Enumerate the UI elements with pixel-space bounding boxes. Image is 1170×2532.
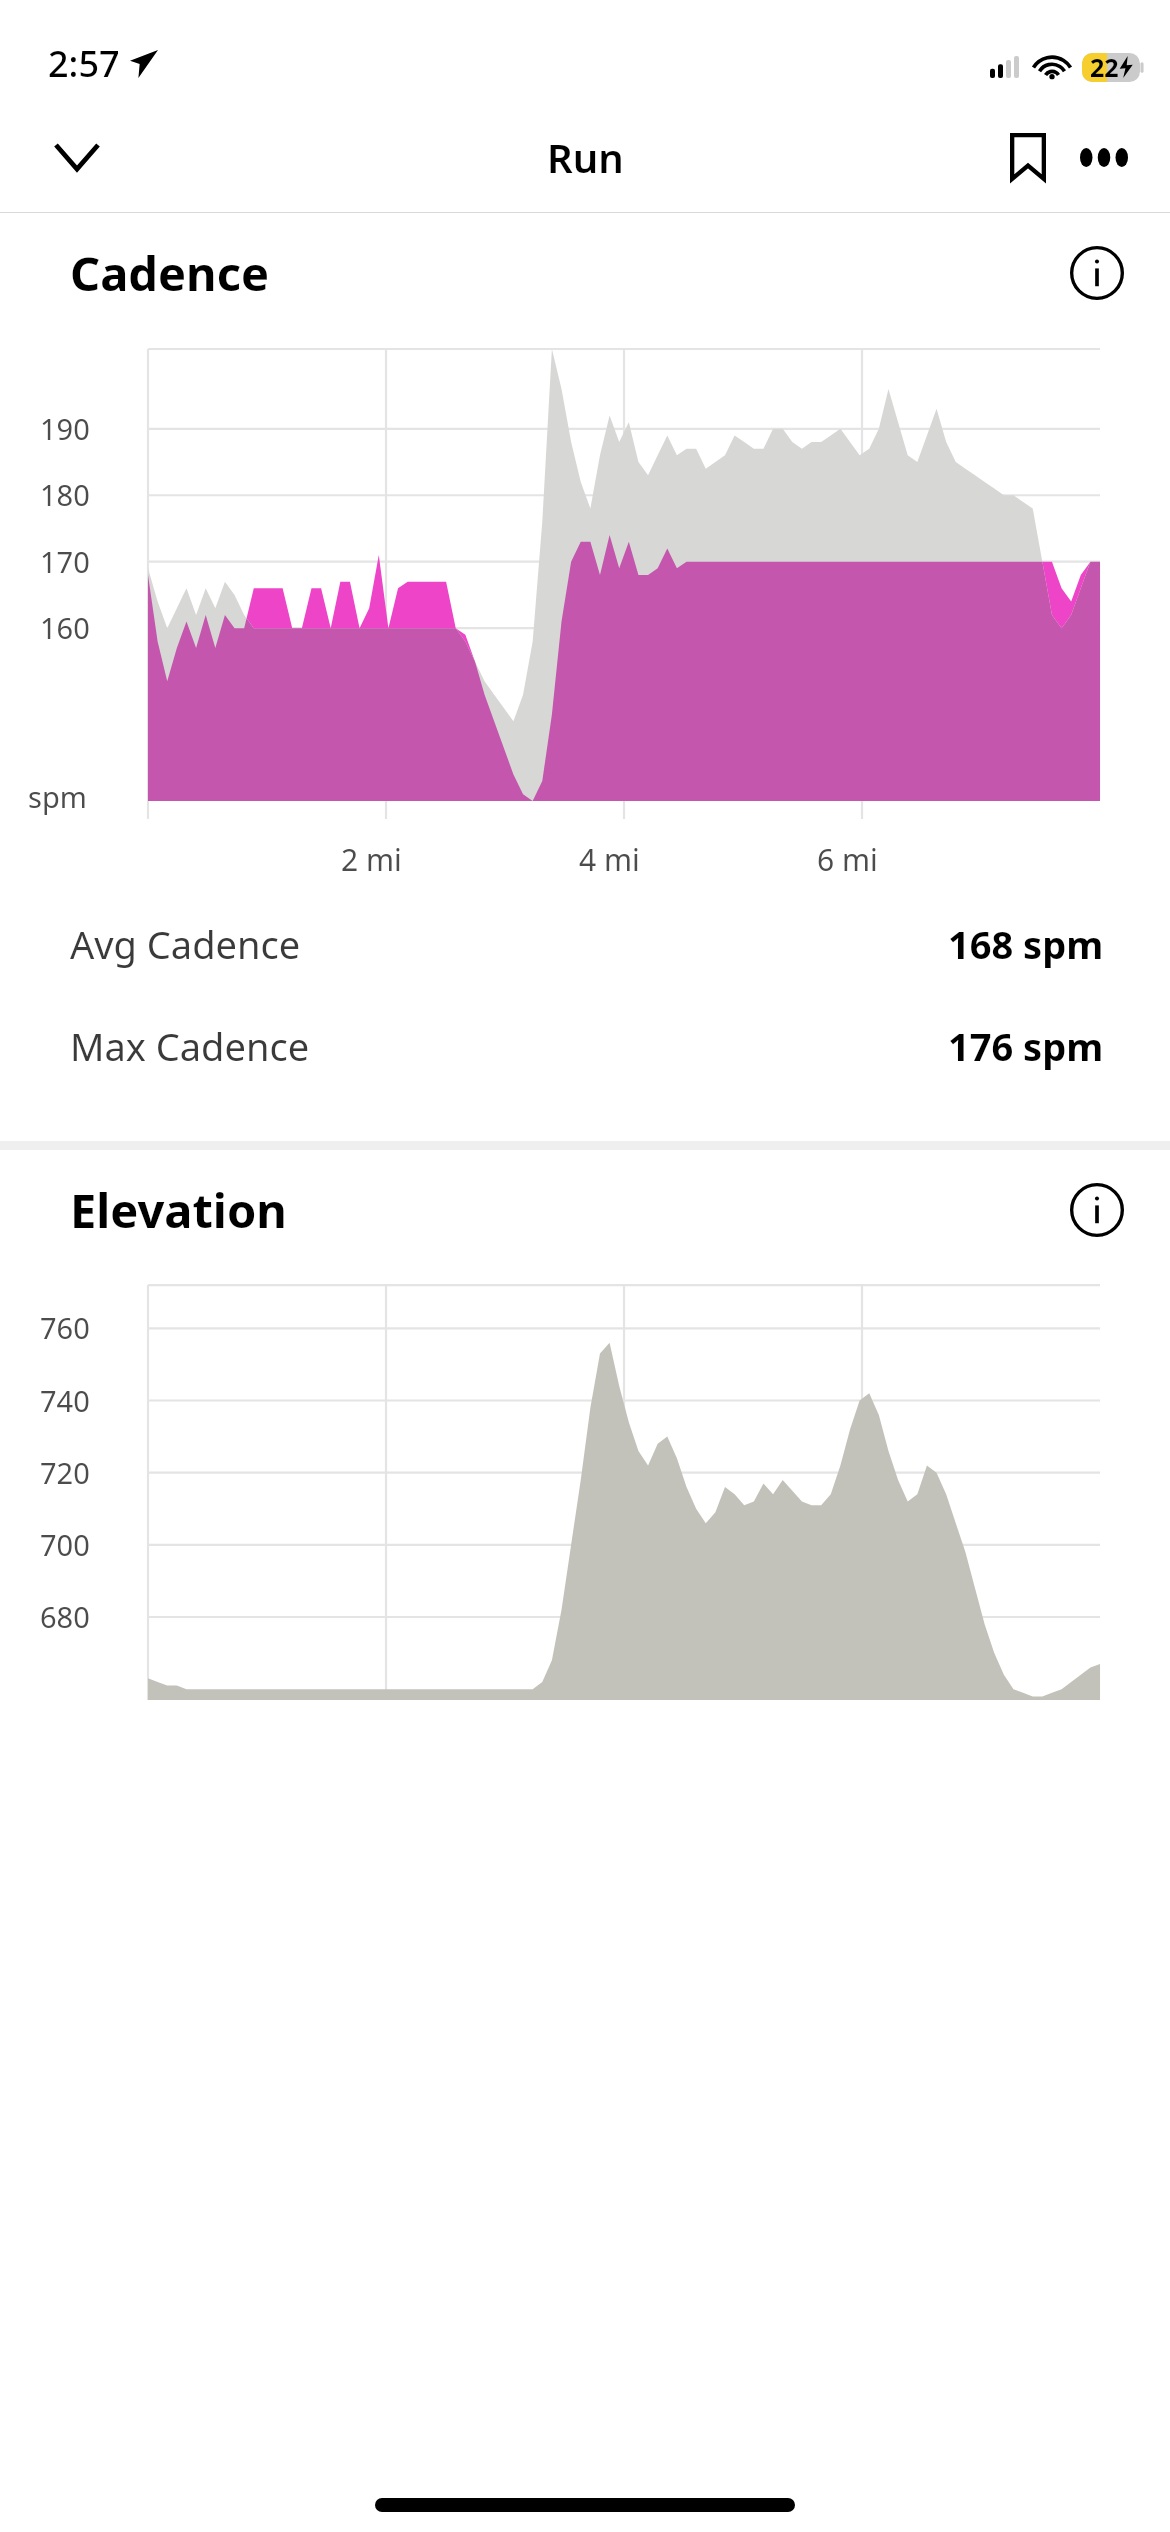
staticText: 170 [40,542,90,581]
staticText: 190 [40,409,90,448]
staticText: 6 mi [817,839,878,880]
staticText: 176 spm [948,1020,1104,1072]
button[interactable]: Collapse [42,122,112,192]
staticText: 4 mi [579,839,640,880]
staticText: 180 [40,475,90,514]
staticText: 2 mi [341,839,402,880]
staticText: Cadence [70,241,269,305]
staticText: 700 [40,1525,90,1564]
staticText: 740 [40,1381,90,1420]
button[interactable]: Avg Cadence [0,893,1170,995]
button[interactable]: Elevation info [1060,1173,1134,1247]
staticText: Run [547,130,624,184]
staticText: 760 [40,1308,90,1347]
button[interactable]: More options [1068,121,1140,193]
staticText: 680 [40,1597,90,1636]
button[interactable]: Bookmark [992,121,1064,193]
staticText: Avg Cadence [70,918,301,970]
staticText: 168 spm [948,918,1104,970]
button[interactable]: Cadence info [1060,236,1134,310]
staticText: 160 [40,608,90,647]
staticText: Max Cadence [70,1020,310,1072]
staticText: 22 [1090,50,1119,84]
button[interactable]: Max Cadence [0,995,1170,1097]
staticText: 720 [40,1453,90,1492]
staticText: Elevation [70,1178,287,1242]
staticText: 2:57 [48,39,120,88]
staticText: spm [28,777,87,816]
